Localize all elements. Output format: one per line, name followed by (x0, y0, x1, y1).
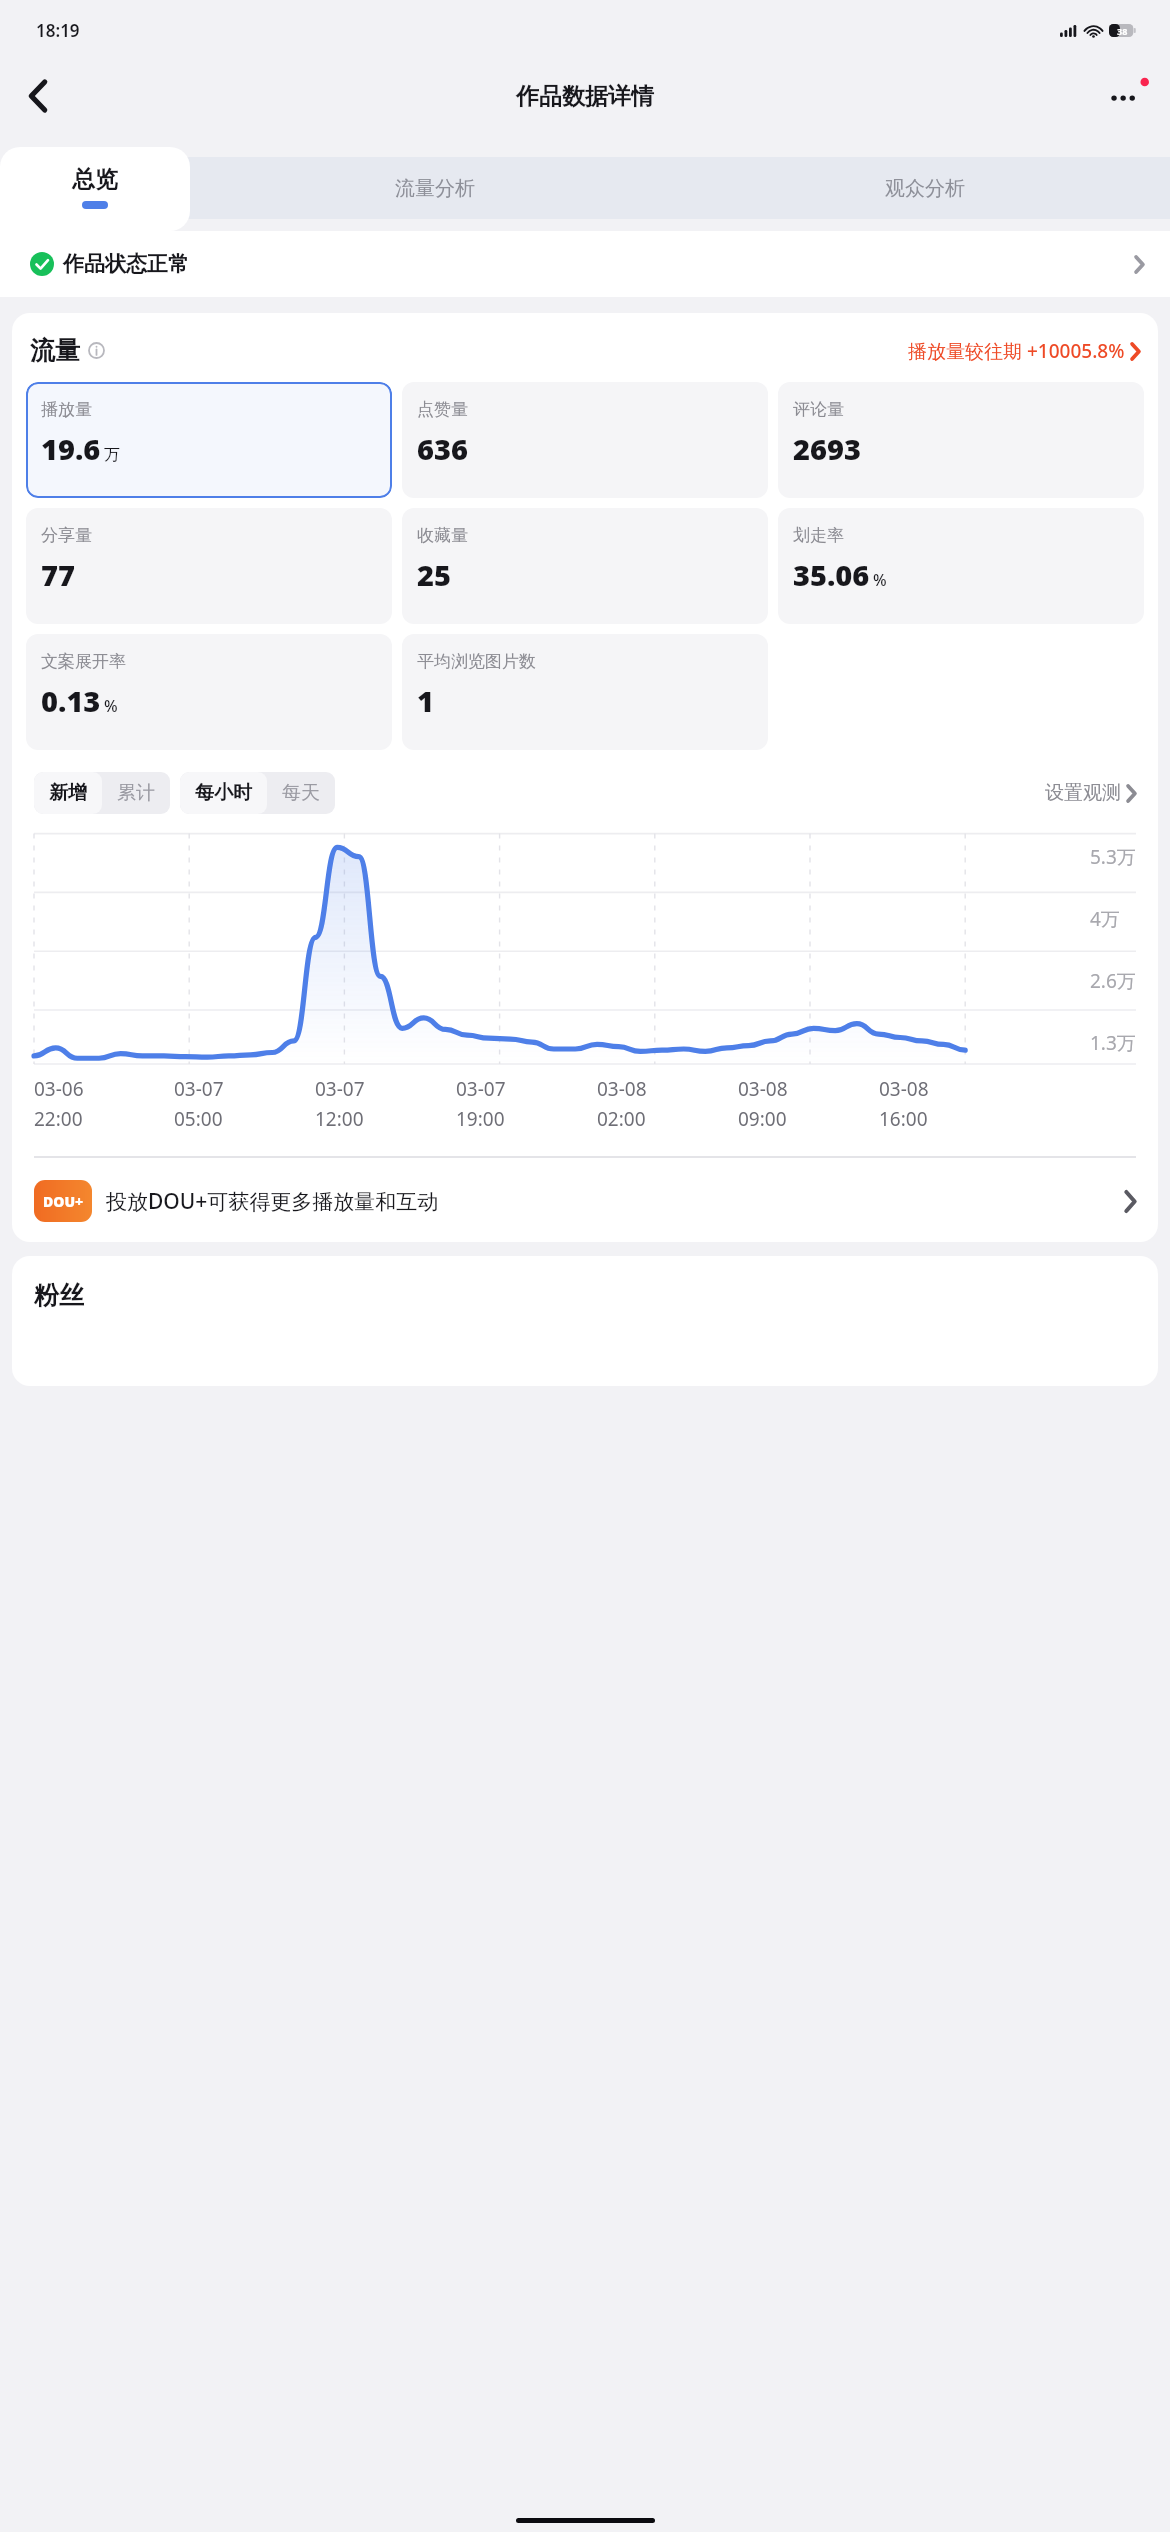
staticText: 02:00 (597, 1106, 646, 1132)
button[interactable]: 平均浏览图片数 (402, 634, 768, 750)
staticText: 投放DOU+可获得更多播放量和互动 (106, 1187, 439, 1216)
button[interactable]: 文案展开率 (26, 634, 392, 750)
staticText: 22:00 (34, 1106, 83, 1132)
staticText: 评论量 (793, 399, 844, 420)
button[interactable]: 每天 (267, 772, 335, 814)
staticText: 收藏量 (417, 525, 468, 546)
button[interactable]: More options (1100, 70, 1152, 122)
staticText: 03-06 (34, 1076, 84, 1102)
staticText: 播放量 (41, 399, 92, 420)
button[interactable]: 播放量较往期 +10005.8% (908, 338, 1140, 364)
button[interactable]: 作品状态正常 (0, 231, 1170, 297)
staticText: % (104, 695, 118, 717)
staticText: 新增 (49, 781, 87, 805)
button[interactable]: Back (14, 72, 62, 120)
staticText: 03-07 (174, 1076, 224, 1102)
button[interactable]: 收藏量 (402, 508, 768, 624)
staticText: 5.3万 (1090, 844, 1136, 870)
staticText: 作品数据详情 (516, 82, 654, 111)
staticText: 观众分析 (885, 176, 965, 201)
staticText: 流量分析 (395, 176, 475, 201)
staticText: 设置观测 (1045, 781, 1121, 805)
button[interactable]: 分享量 (26, 508, 392, 624)
button[interactable]: 设置观测 (1045, 781, 1136, 805)
staticText: 03-08 (738, 1076, 788, 1102)
staticText: 0.13 (41, 681, 101, 720)
button[interactable]: 每小时 (180, 772, 267, 814)
staticText: DOU+ (43, 1192, 84, 1211)
staticText: 16:00 (879, 1106, 928, 1132)
staticText: 25 (417, 555, 451, 594)
staticText: 流量 (30, 335, 80, 366)
button[interactable]: 观众分析 (680, 157, 1170, 219)
staticText: 万 (104, 445, 120, 465)
staticText: 1.3万 (1090, 1030, 1136, 1056)
button[interactable]: 累计 (102, 772, 170, 814)
staticText: 19:00 (456, 1106, 505, 1132)
staticText: 播放量较往期 +10005.8% (908, 338, 1125, 364)
staticText: 每小时 (195, 781, 252, 805)
staticText: 19.6 (41, 429, 101, 468)
staticText: 03-08 (879, 1076, 929, 1102)
button[interactable]: 点赞量 (402, 382, 768, 498)
staticText: 35.06 (793, 555, 870, 594)
staticText: 38 (1117, 25, 1128, 37)
staticText: 1 (417, 681, 434, 720)
staticText: 点赞量 (417, 399, 468, 420)
staticText: 粉丝 (34, 1280, 84, 1311)
staticText: 平均浏览图片数 (417, 651, 536, 672)
staticText: 4万 (1090, 906, 1120, 932)
button[interactable]: 划走率 (778, 508, 1144, 624)
staticText: 12:00 (315, 1106, 364, 1132)
staticText: 文案展开率 (41, 651, 126, 672)
button[interactable]: 流量分析 (190, 157, 680, 219)
staticText: 77 (41, 555, 75, 594)
staticText: 05:00 (174, 1106, 223, 1132)
staticText: 03-07 (456, 1076, 506, 1102)
staticText: 划走率 (793, 525, 844, 546)
button[interactable]: 评论量 (778, 382, 1144, 498)
staticText: 03-07 (315, 1076, 365, 1102)
staticText: % (873, 569, 887, 591)
staticText: 每天 (282, 781, 320, 805)
staticText: 18:19 (36, 19, 80, 42)
button[interactable]: 总览 (0, 147, 190, 231)
staticText: 累计 (117, 781, 155, 805)
staticText: 作品状态正常 (63, 251, 189, 277)
staticText: 2693 (793, 429, 861, 468)
button[interactable]: 播放量 (26, 382, 392, 498)
staticText: 636 (417, 429, 468, 468)
staticText: 09:00 (738, 1106, 787, 1132)
staticText: 总览 (72, 165, 118, 194)
staticText: 03-08 (597, 1076, 647, 1102)
button[interactable]: DOU+ (12, 1180, 1158, 1222)
button[interactable]: 新增 (34, 772, 102, 814)
staticText: 分享量 (41, 525, 92, 546)
staticText: 2.6万 (1090, 968, 1136, 994)
